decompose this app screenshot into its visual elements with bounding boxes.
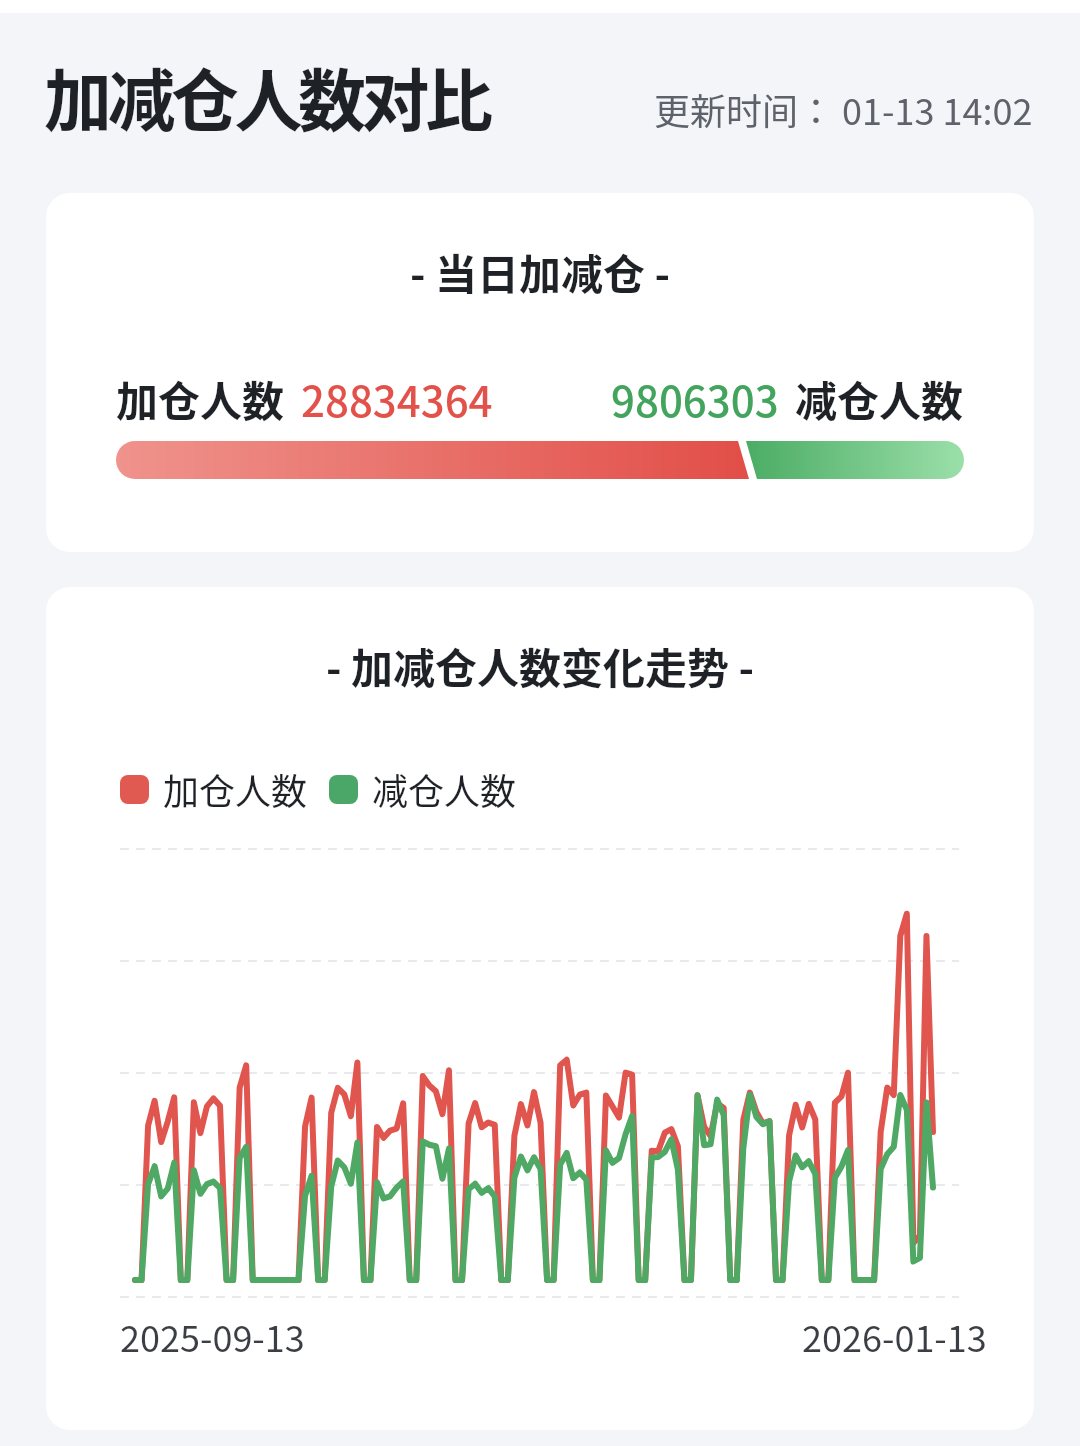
staticText: 加减仓人数对比 [44,47,489,145]
button[interactable]: - 当日加减仓 - [46,193,1034,552]
staticText: 28834364 [301,368,493,429]
staticText: 加仓人数 [116,368,285,429]
staticText: - 加减仓人数变化走势 - [326,635,755,696]
staticText: 减仓人数 [372,763,517,815]
staticText: 9806303 [611,368,779,429]
button[interactable]: - 加减仓人数变化走势 - [46,587,1034,1430]
staticText: 更新时间： 01-13 14:02 [654,83,1033,135]
staticText: 加仓人数 [163,763,308,815]
staticText: 2026-01-13 [802,1310,987,1362]
staticText: 2025-09-13 [120,1310,305,1362]
staticText: 减仓人数 [795,368,964,429]
staticText: - 当日加减仓 - [410,241,671,302]
